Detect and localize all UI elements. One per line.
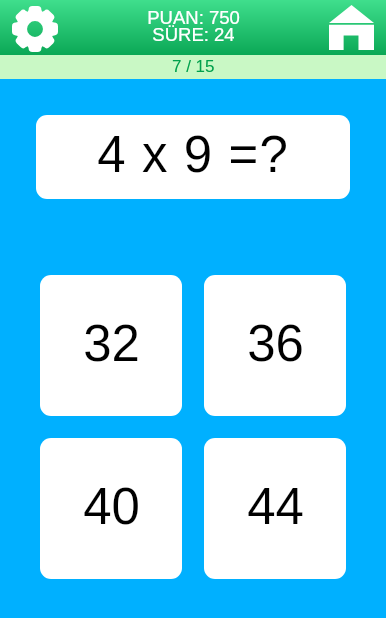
staticText: 7 / 15 — [172, 57, 215, 76]
staticText: 32 — [83, 315, 140, 372]
staticText: SÜRE: 24 — [152, 24, 235, 45]
staticText: 4 x 9 =? — [97, 126, 289, 183]
staticText: PUAN: 750 — [147, 7, 240, 28]
button[interactable]: Settings — [12, 6, 58, 52]
button[interactable]: 32 — [40, 275, 182, 416]
button[interactable]: 40 — [40, 438, 182, 579]
staticText: 40 — [83, 478, 140, 535]
button[interactable]: 44 — [204, 438, 346, 579]
staticText: 44 — [247, 478, 304, 535]
staticText: 36 — [247, 315, 304, 372]
button[interactable]: Home — [329, 5, 374, 50]
button[interactable]: 36 — [204, 275, 346, 416]
